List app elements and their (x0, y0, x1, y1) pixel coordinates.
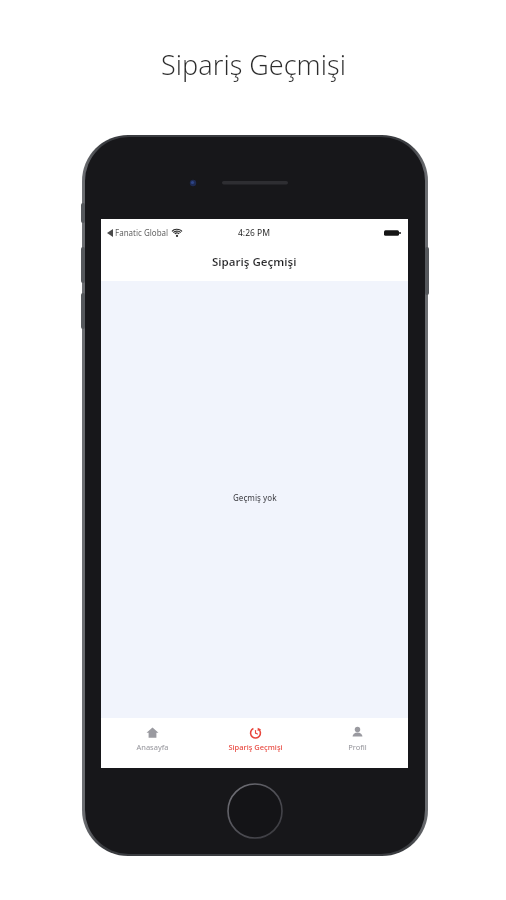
button[interactable]: Anasayfa (101, 718, 204, 768)
button[interactable]: Profil (306, 718, 408, 768)
button[interactable]: Sipariş Geçmişi (204, 718, 306, 768)
staticText: Fanatic Global (115, 227, 169, 238)
staticText: 4:26 PM (238, 227, 271, 239)
staticText: Sipariş Geçmişi (161, 46, 346, 83)
staticText: Sipariş Geçmişi (212, 254, 297, 270)
staticText: Geçmiş yok (233, 492, 277, 503)
staticText: Sipariş Geçmişi (228, 742, 283, 752)
staticText: Profil (348, 742, 367, 752)
staticText: Anasayfa (136, 742, 169, 752)
